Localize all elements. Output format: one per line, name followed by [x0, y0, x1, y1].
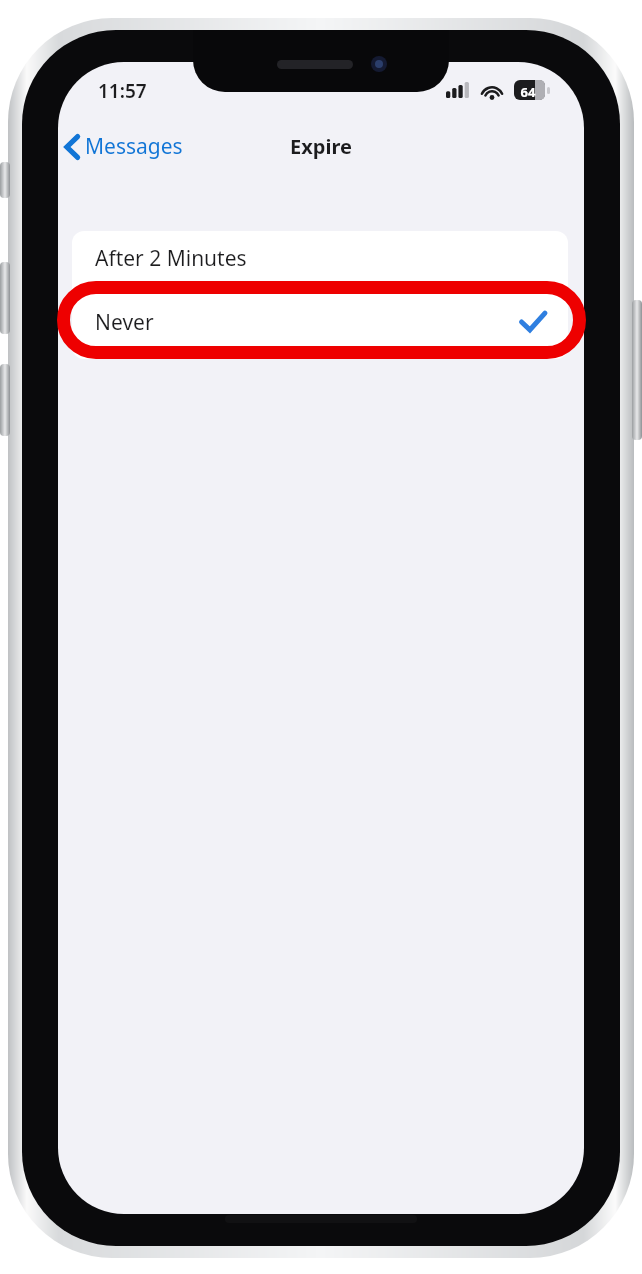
staticText: 64: [517, 83, 539, 101]
staticText: After 2 Minutes: [95, 244, 247, 273]
button[interactable]: After 2 Minutes: [72, 231, 568, 286]
staticText: 11:57: [98, 78, 147, 104]
other: Selected: [520, 311, 546, 333]
staticText: Expire: [290, 133, 352, 160]
button[interactable]: Messages: [58, 126, 193, 167]
staticText: Never: [95, 308, 154, 337]
staticText: Messages: [85, 132, 183, 161]
button[interactable]: Never: [72, 286, 568, 358]
